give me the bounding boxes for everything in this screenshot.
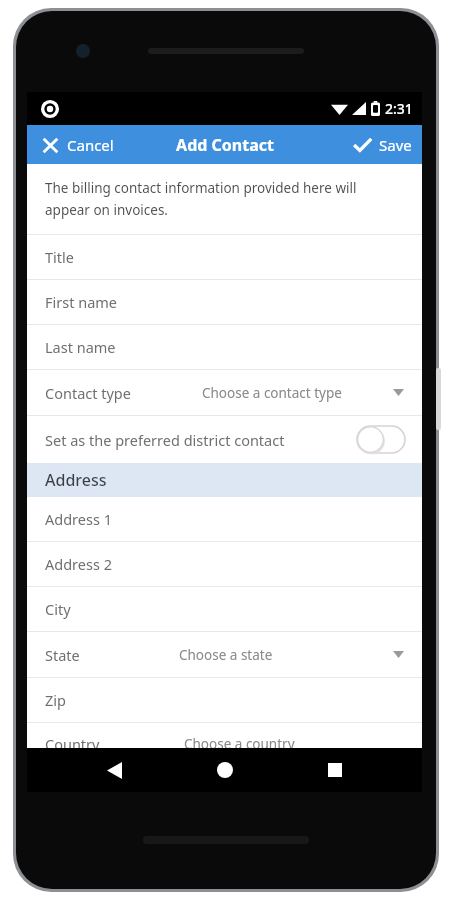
staticText: Zip	[45, 690, 66, 710]
button[interactable]: Set as the preferred district contact	[27, 416, 422, 463]
staticText: The billing contact information provided…	[45, 179, 357, 197]
button[interactable]: Back	[91, 748, 137, 792]
button[interactable]: First name	[27, 280, 422, 324]
button[interactable]: Contact type	[27, 370, 422, 415]
staticText: Choose a country	[184, 735, 295, 753]
staticText: Title	[45, 247, 74, 267]
button[interactable]: Home	[202, 748, 248, 792]
button[interactable]: Title	[27, 235, 422, 279]
staticText: appear on invoices.	[45, 201, 168, 219]
staticText: Contact type	[45, 383, 131, 403]
button[interactable]: State	[27, 632, 422, 677]
button[interactable]: Country	[27, 723, 422, 745]
staticText: Add Contact	[176, 134, 274, 156]
staticText: First name	[45, 292, 118, 312]
button[interactable]: Last name	[27, 325, 422, 369]
staticText: Address 1	[45, 509, 112, 529]
staticText: Address	[45, 469, 107, 491]
button[interactable]: Address 1	[27, 497, 422, 541]
staticText: Cancel	[67, 135, 114, 155]
staticText: Choose a contact type	[202, 384, 342, 402]
button[interactable]: Cancel	[27, 129, 124, 161]
button[interactable]: Save	[343, 129, 422, 161]
staticText: City	[45, 599, 71, 619]
button[interactable]: Recent apps	[312, 748, 358, 792]
staticText: 2:31	[385, 99, 413, 118]
staticText: State	[45, 645, 80, 665]
button[interactable]: City	[27, 587, 422, 631]
button[interactable]: Zip	[27, 678, 422, 722]
staticText: Set as the preferred district contact	[45, 430, 285, 450]
staticText: Choose a state	[179, 646, 273, 664]
staticText: Save	[379, 135, 412, 155]
staticText: Country	[45, 734, 100, 754]
staticText: Address 2	[45, 554, 112, 574]
button[interactable]: Address 2	[27, 542, 422, 586]
staticText: Last name	[45, 337, 116, 357]
